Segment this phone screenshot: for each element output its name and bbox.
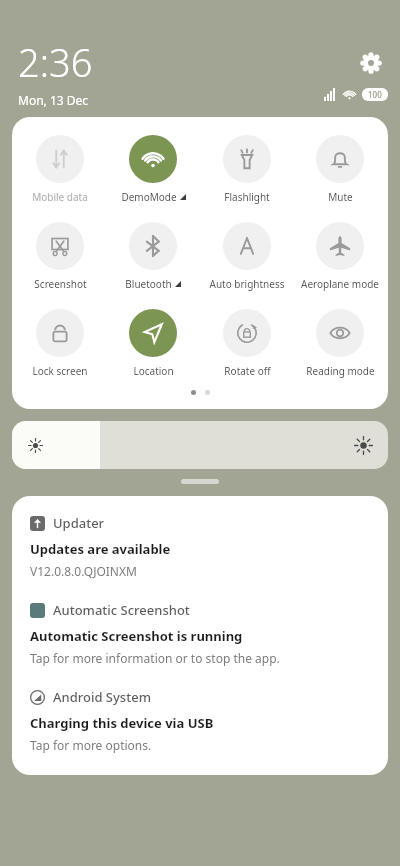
- staticText: Flashlight: [224, 190, 270, 204]
- staticText: Bluetooth: [125, 277, 172, 291]
- staticText: Reading mode: [306, 364, 375, 378]
- staticText: V12.0.8.0.QJOINXM: [30, 563, 137, 579]
- button[interactable]: Rotate off: [201, 307, 293, 380]
- button[interactable]: Android System: [30, 688, 370, 753]
- button[interactable]: Mute: [294, 133, 386, 206]
- staticText: Mobile data: [32, 190, 88, 204]
- staticText: Tap for more information or to stop the …: [30, 650, 280, 666]
- staticText: 100: [368, 89, 382, 100]
- staticText: Aeroplane mode: [301, 277, 379, 291]
- staticText: Mon, 13 Dec: [18, 92, 89, 108]
- button[interactable]: Mobile data: [14, 133, 106, 206]
- staticText: Updater: [53, 514, 105, 532]
- staticText: Tap for more options.: [30, 737, 152, 753]
- button[interactable]: Brightness: [12, 421, 388, 469]
- staticText: Auto brightness: [209, 277, 285, 291]
- button[interactable]: Bluetooth: [107, 220, 199, 293]
- button[interactable]: Screenshot: [14, 220, 106, 293]
- staticText: DemoMode: [121, 190, 177, 204]
- staticText: Screenshot: [34, 277, 87, 291]
- staticText: Mute: [328, 190, 353, 204]
- button[interactable]: Flashlight: [201, 133, 293, 206]
- button[interactable]: Settings: [356, 48, 386, 78]
- button[interactable]: DemoMode: [107, 133, 199, 206]
- button[interactable]: Lock screen: [14, 307, 106, 380]
- staticText: Android System: [53, 688, 151, 706]
- staticText: Charging this device via USB: [30, 714, 214, 732]
- button[interactable]: Updater: [30, 514, 370, 579]
- button[interactable]: Auto brightness: [201, 220, 293, 293]
- button[interactable]: Aeroplane mode: [294, 220, 386, 293]
- staticText: Automatic Screenshot is running: [30, 627, 243, 645]
- staticText: Automatic Screenshot: [53, 601, 190, 619]
- button[interactable]: Automatic Screenshot: [30, 601, 370, 666]
- staticText: Rotate off: [224, 364, 271, 378]
- staticText: 2:36: [18, 36, 93, 88]
- staticText: Updates are available: [30, 540, 171, 558]
- button[interactable]: Reading mode: [294, 307, 386, 380]
- staticText: Location: [133, 364, 174, 378]
- staticText: Lock screen: [32, 364, 88, 378]
- button[interactable]: Location: [107, 307, 199, 380]
